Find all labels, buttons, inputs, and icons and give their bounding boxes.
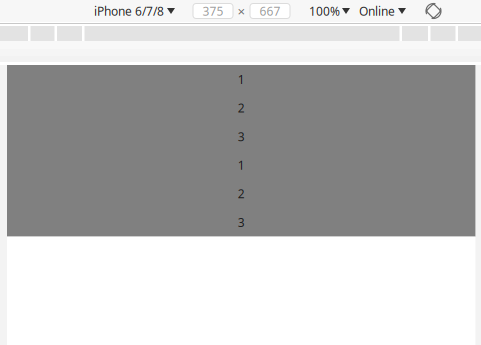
staticText: 1 xyxy=(238,71,245,87)
staticText: 2 xyxy=(238,186,245,202)
button[interactable]: 100% xyxy=(309,0,350,22)
staticText: 100% xyxy=(309,3,340,19)
staticText: 1 xyxy=(238,157,245,173)
button[interactable]: 667 xyxy=(250,3,290,18)
staticText: × xyxy=(237,2,245,20)
staticText: 667 xyxy=(259,3,280,19)
button[interactable]: Toolbar item xyxy=(430,26,455,41)
button[interactable]: 375 xyxy=(193,3,233,18)
staticText: 2 xyxy=(238,100,245,116)
staticText: Online xyxy=(359,3,395,19)
button[interactable]: iPhone 6/7/8 xyxy=(94,0,175,22)
button[interactable]: Online xyxy=(359,0,406,22)
staticText: 375 xyxy=(202,3,223,19)
staticText: 3 xyxy=(238,214,245,230)
button[interactable]: Rotate device xyxy=(425,0,442,22)
staticText: iPhone 6/7/8 xyxy=(94,3,164,19)
staticText: 3 xyxy=(238,128,245,144)
